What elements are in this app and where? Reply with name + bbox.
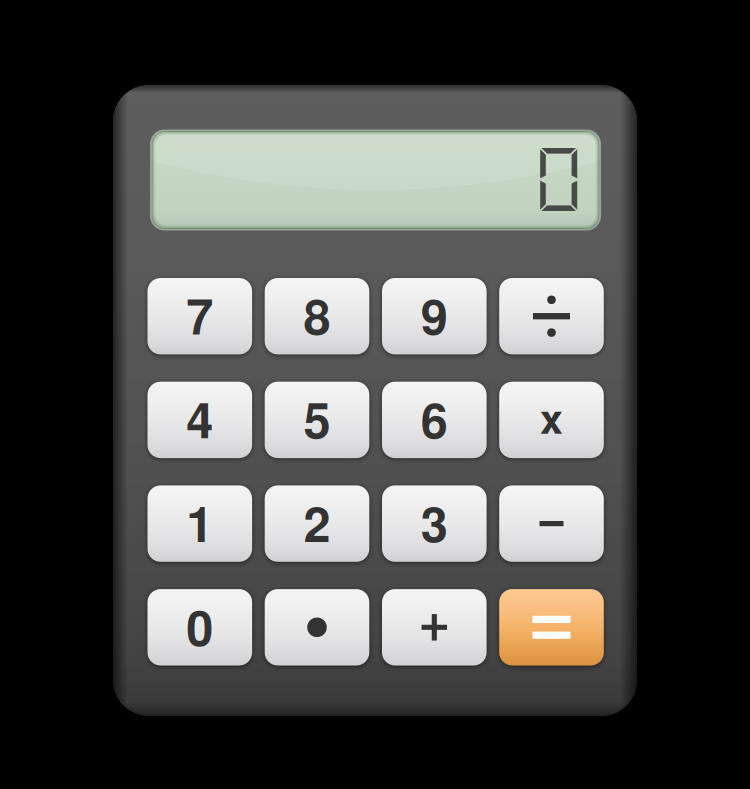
- button[interactable]: 2: [265, 485, 369, 562]
- staticText: 0: [186, 591, 213, 661]
- staticText: 8: [303, 280, 330, 350]
- button[interactable]: 0: [147, 589, 252, 665]
- button[interactable]: 6: [382, 382, 487, 458]
- staticText: 2: [303, 487, 330, 557]
- button[interactable]: 9: [382, 278, 487, 354]
- button[interactable]: Plus: [382, 589, 487, 665]
- button[interactable]: 1: [147, 485, 252, 562]
- button[interactable]: Equals: [499, 589, 604, 665]
- button[interactable]: 3: [382, 485, 487, 562]
- button[interactable]: 8: [265, 278, 369, 354]
- staticText: 1: [186, 487, 213, 557]
- button[interactable]: Multiply: [499, 382, 604, 458]
- button[interactable]: 4: [147, 382, 252, 458]
- staticText: 9: [421, 280, 448, 350]
- staticText: 7: [186, 280, 213, 350]
- button[interactable]: Minus: [499, 485, 604, 562]
- staticText: 6: [421, 384, 448, 453]
- staticText: x: [540, 387, 563, 446]
- staticText: 4: [186, 384, 213, 453]
- button[interactable]: 7: [147, 278, 252, 354]
- staticText: 3: [421, 487, 448, 557]
- staticText: 5: [303, 384, 330, 453]
- button[interactable]: Decimal point: [265, 589, 369, 665]
- button[interactable]: Divide: [499, 278, 604, 354]
- button[interactable]: 5: [265, 382, 369, 458]
